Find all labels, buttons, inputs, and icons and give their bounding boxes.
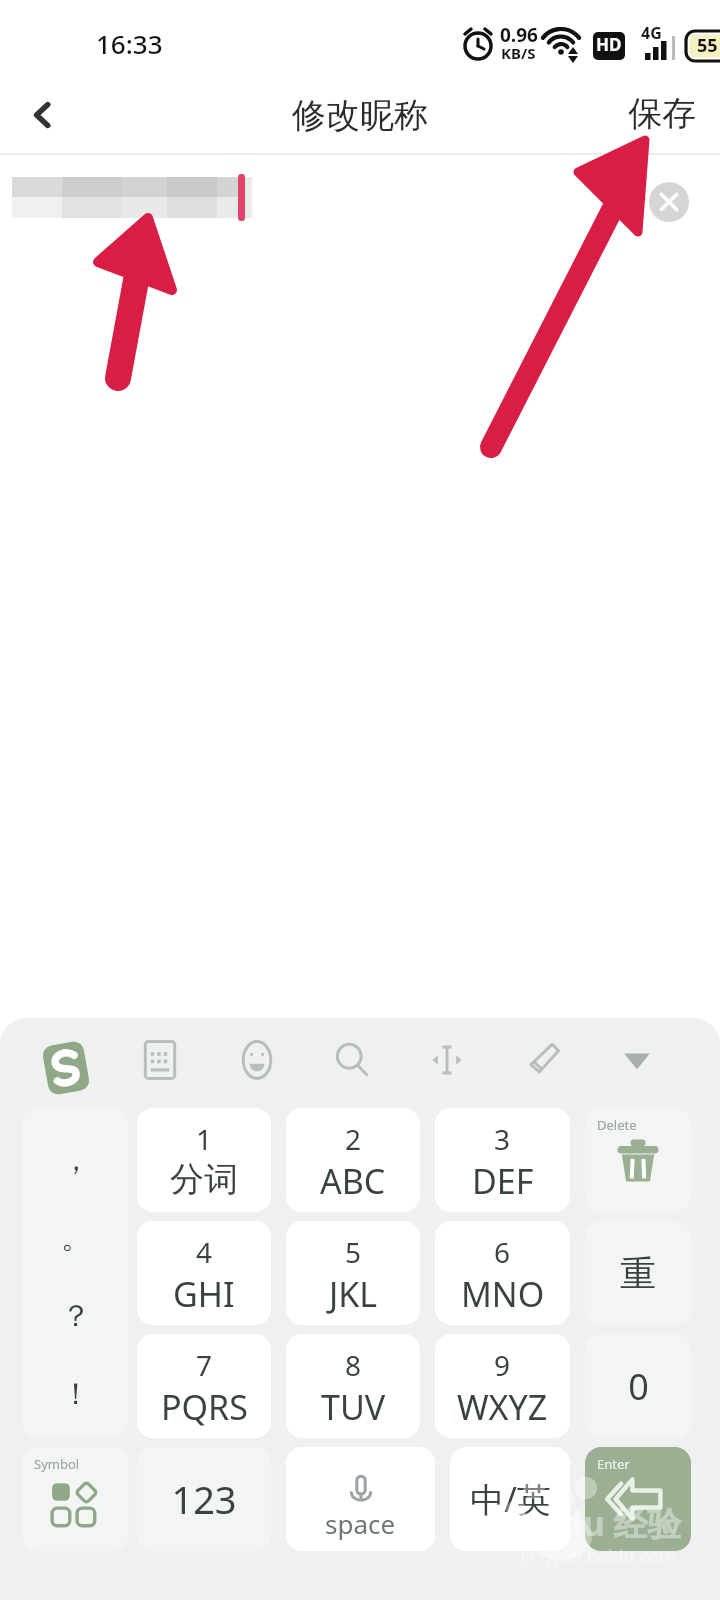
staticText: 8 bbox=[345, 1346, 362, 1384]
button[interactable]: 5 bbox=[286, 1221, 420, 1325]
button[interactable]: 6 bbox=[435, 1221, 570, 1325]
staticText: Enter bbox=[597, 1455, 630, 1473]
button[interactable]: Space bbox=[286, 1447, 435, 1551]
button[interactable]: Symbols bbox=[22, 1447, 128, 1551]
button[interactable]: Delete bbox=[585, 1108, 691, 1212]
staticText: 123 bbox=[171, 1473, 237, 1525]
staticText: 4G bbox=[641, 22, 662, 44]
staticText: 4 bbox=[196, 1233, 213, 1271]
staticText: 保存 bbox=[628, 92, 696, 135]
button[interactable]: 8 bbox=[286, 1334, 420, 1438]
staticText: 3 bbox=[494, 1120, 511, 1158]
button[interactable]: 123 bbox=[137, 1447, 271, 1551]
button[interactable]: 1 bbox=[137, 1108, 271, 1212]
staticText: Delete bbox=[597, 1116, 637, 1134]
staticText: 分词 bbox=[170, 1158, 238, 1201]
button[interactable]: 2 bbox=[286, 1108, 420, 1212]
button[interactable]: 重 bbox=[585, 1221, 691, 1325]
button[interactable]: 中/英 bbox=[450, 1447, 570, 1551]
staticText: 2 bbox=[345, 1120, 362, 1158]
button[interactable]: Clear bbox=[645, 178, 693, 226]
button[interactable]: Enter bbox=[585, 1447, 691, 1551]
staticText: 0 bbox=[628, 1362, 649, 1411]
staticText: jingyan.baidu.com bbox=[520, 1544, 676, 1569]
button[interactable]: Keyboard layout bbox=[130, 1030, 190, 1090]
staticText: 9 bbox=[494, 1346, 511, 1384]
staticText: 中/英 bbox=[470, 1476, 551, 1522]
staticText: DEF bbox=[472, 1158, 534, 1204]
button[interactable] bbox=[22, 1108, 128, 1438]
staticText: 0.96 bbox=[500, 22, 538, 48]
staticText: 6 bbox=[494, 1233, 511, 1271]
staticText: HD bbox=[596, 33, 622, 56]
button[interactable]: 0 bbox=[585, 1334, 691, 1438]
button[interactable]: Hide keyboard bbox=[607, 1030, 667, 1090]
button[interactable]: Sogou input settings bbox=[36, 1038, 96, 1098]
staticText: 55 bbox=[697, 33, 718, 58]
staticText: GHI bbox=[173, 1271, 235, 1317]
staticText: 。 bbox=[61, 1219, 91, 1257]
staticText: 1 bbox=[196, 1120, 213, 1158]
button[interactable]: 4 bbox=[137, 1221, 271, 1325]
button[interactable]: Back bbox=[8, 80, 78, 150]
button[interactable]: Search bbox=[322, 1030, 382, 1090]
staticText: ， bbox=[61, 1141, 91, 1179]
staticText: space bbox=[325, 1506, 396, 1541]
staticText: KB/S bbox=[501, 43, 536, 63]
staticText: 修改昵称 bbox=[292, 94, 428, 137]
button[interactable]: Emoji bbox=[227, 1030, 287, 1090]
button[interactable]: 9 bbox=[435, 1334, 570, 1438]
staticText: 7 bbox=[196, 1346, 213, 1384]
staticText: PQRS bbox=[161, 1384, 248, 1430]
staticText: MNO bbox=[461, 1271, 545, 1317]
staticText: Symbol bbox=[34, 1455, 80, 1473]
staticText: WXYZ bbox=[457, 1384, 548, 1430]
staticText: 5 bbox=[345, 1233, 362, 1271]
staticText: ABC bbox=[320, 1158, 386, 1204]
button[interactable]: 7 bbox=[137, 1334, 271, 1438]
staticText: Baidu 经验 bbox=[508, 1500, 682, 1546]
button[interactable]: Theme bbox=[512, 1030, 572, 1090]
button[interactable]: 保存 bbox=[628, 92, 696, 135]
staticText: 16:33 bbox=[96, 26, 163, 61]
staticText: ？ bbox=[61, 1297, 91, 1335]
staticText: ！ bbox=[61, 1375, 91, 1413]
button[interactable]: 3 bbox=[435, 1108, 570, 1212]
staticText: TUV bbox=[321, 1384, 386, 1430]
staticText: 重 bbox=[620, 1251, 656, 1296]
staticText: JKL bbox=[329, 1271, 378, 1317]
button[interactable]: Cursor move bbox=[417, 1030, 477, 1090]
